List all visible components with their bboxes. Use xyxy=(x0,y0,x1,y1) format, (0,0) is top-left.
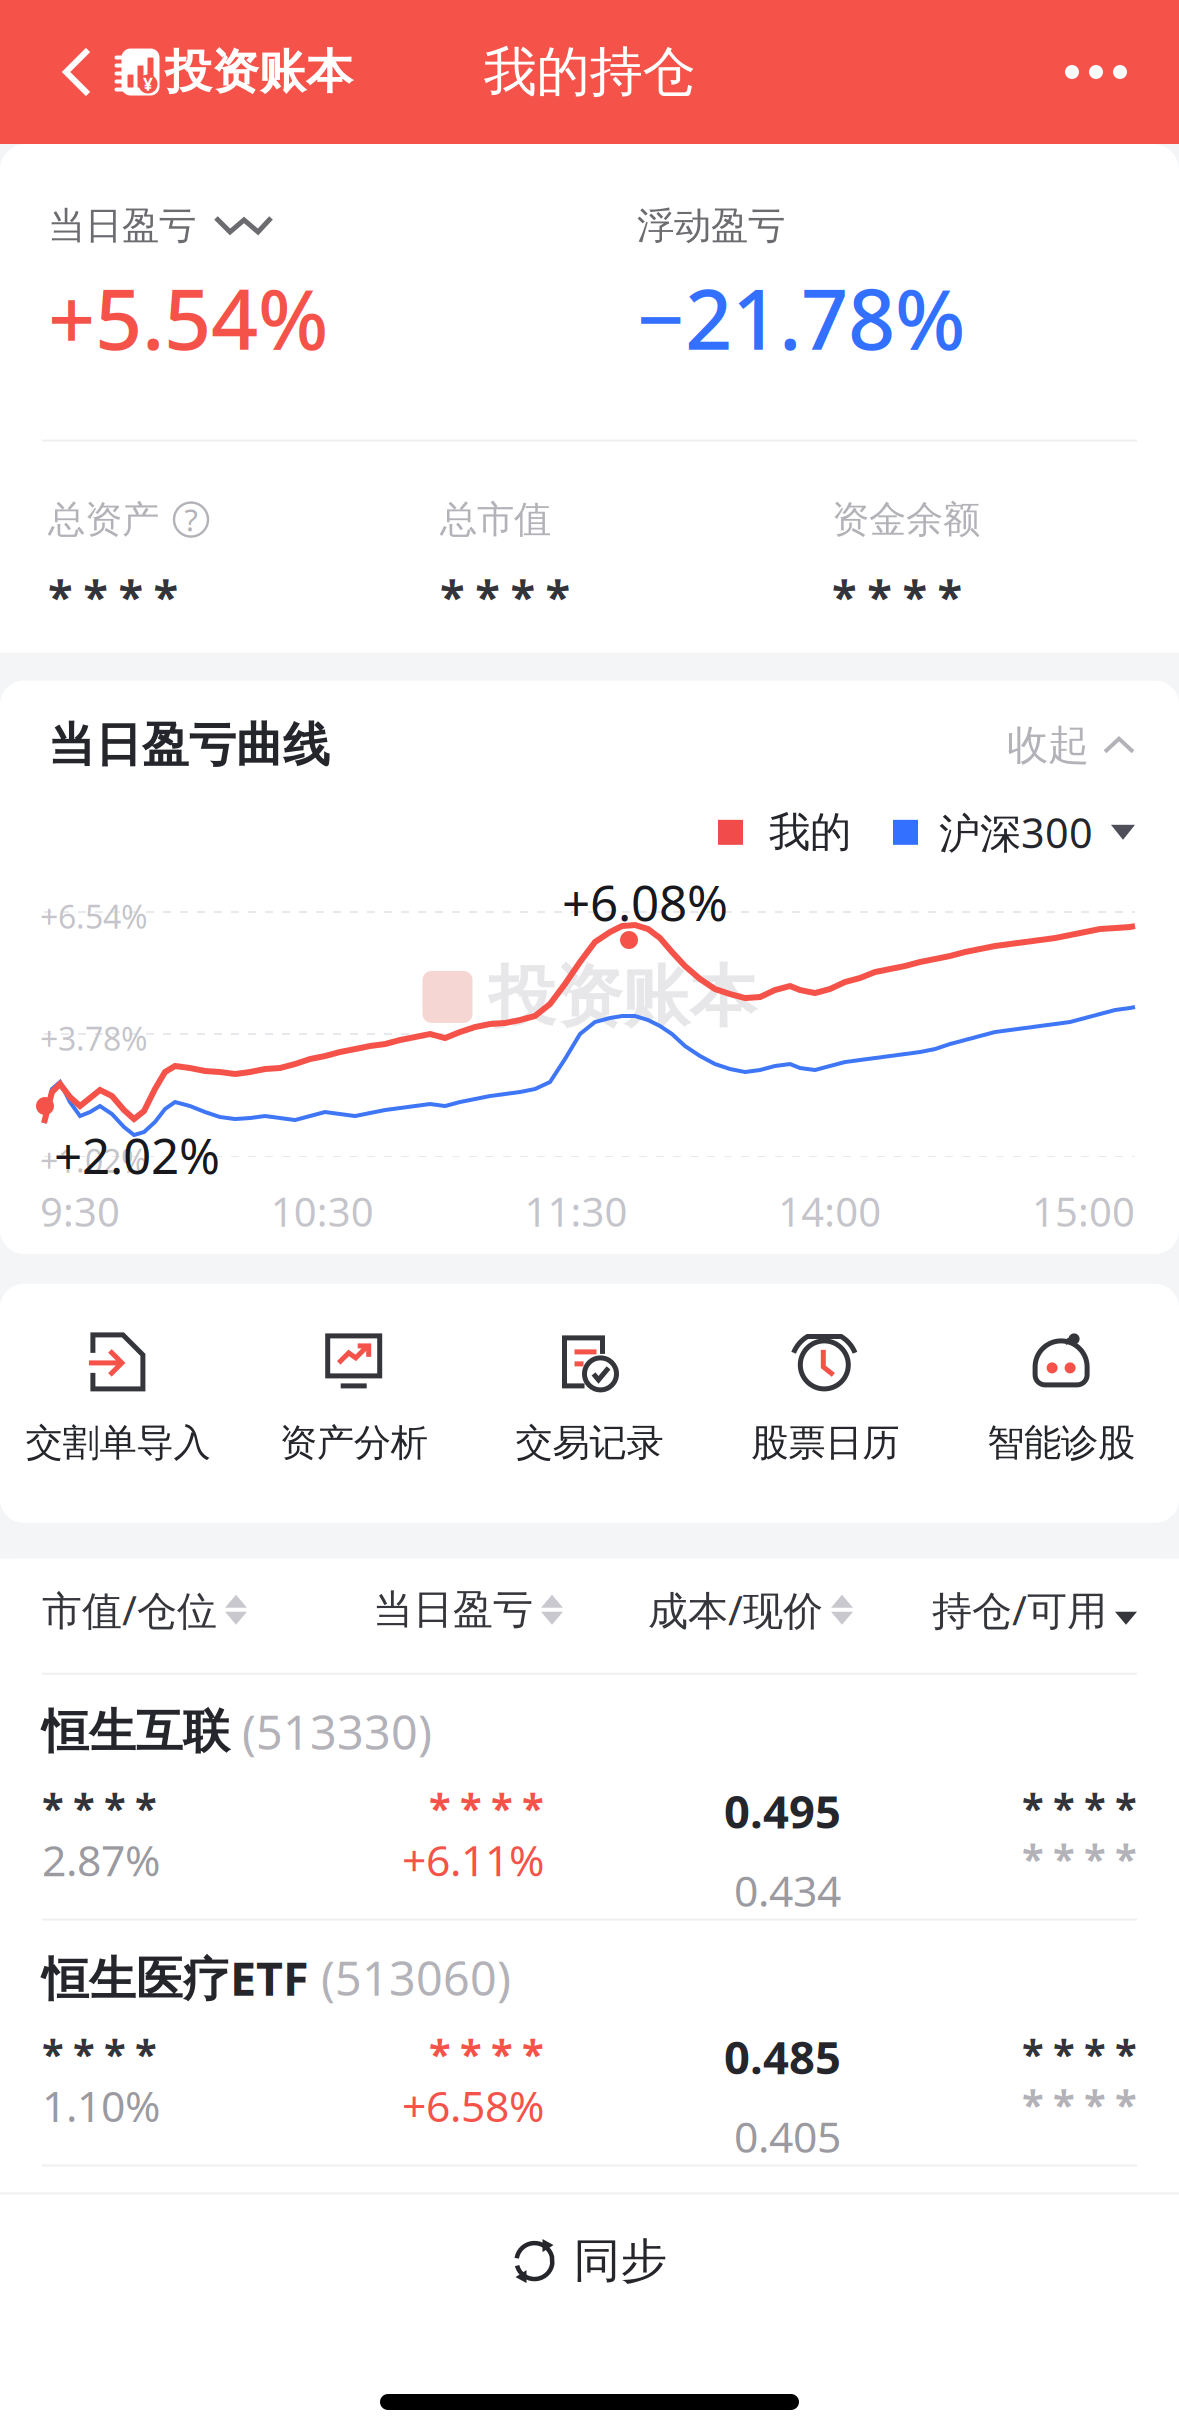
button[interactable]: 更多 xyxy=(1025,0,1179,144)
staticText: * xyxy=(522,1781,544,1834)
staticText: (513060) xyxy=(309,1947,511,2009)
button[interactable]: 返回 投资账本 xyxy=(0,0,363,144)
button[interactable]: 切换对比指数 xyxy=(851,805,1135,860)
staticText: * xyxy=(1084,1831,1106,1884)
staticText: +3.78% xyxy=(40,1017,148,1059)
button[interactable]: 成本/现价 xyxy=(648,1586,898,1634)
staticText: 智能诊股 xyxy=(987,1420,1135,1466)
staticText: 2.87% xyxy=(42,1831,160,1888)
staticText: * xyxy=(73,2027,95,2080)
staticText: +6.11% xyxy=(402,1831,544,1888)
staticText: 资产分析 xyxy=(280,1420,428,1466)
staticText: 浮动盈亏 xyxy=(637,203,785,249)
staticText: 0.495 xyxy=(724,1781,841,1841)
staticText: 交易记录 xyxy=(515,1420,663,1466)
staticText: * xyxy=(832,565,857,626)
button[interactable]: 我的 xyxy=(718,807,851,858)
staticText: * xyxy=(1053,2027,1075,2080)
staticText: * xyxy=(1022,1781,1044,1834)
staticText: * xyxy=(118,565,143,626)
staticText: 总资产 xyxy=(48,497,159,542)
staticText: * xyxy=(135,1781,157,1834)
button[interactable]: 交易记录 xyxy=(472,1284,707,1523)
button[interactable]: 恒生互联 xyxy=(0,1675,1179,1919)
staticText: * xyxy=(1115,2027,1137,2080)
staticText: 10:30 xyxy=(271,1185,374,1238)
staticText: +1.02% xyxy=(40,1139,148,1181)
staticText: * xyxy=(1084,2027,1106,2080)
staticText: 投资账本 xyxy=(488,956,756,1038)
staticText: +6.58% xyxy=(402,2077,544,2134)
staticText: * xyxy=(902,565,927,626)
staticText: +6.08% xyxy=(562,869,728,934)
staticText: 持仓/可用 xyxy=(932,1583,1107,1636)
staticText: ? xyxy=(184,499,197,540)
button[interactable]: 智能诊股 xyxy=(943,1284,1179,1523)
staticText: 15:00 xyxy=(1032,1185,1135,1238)
staticText: * xyxy=(1022,2027,1044,2080)
button[interactable]: 当日盈亏 xyxy=(373,1586,648,1634)
staticText: 投资账本 xyxy=(165,43,353,101)
staticText: * xyxy=(1115,2077,1137,2130)
staticText: 0.434 xyxy=(734,1862,841,1919)
staticText: * xyxy=(460,2027,482,2080)
button[interactable]: 恒生医疗ETF xyxy=(0,1921,1179,2164)
button[interactable]: 交割单导入 xyxy=(0,1284,236,1523)
staticText: * xyxy=(42,1781,64,1834)
staticText: * xyxy=(104,2027,126,2080)
staticText: 14:00 xyxy=(778,1185,881,1238)
button[interactable]: 股票日历 xyxy=(707,1284,943,1523)
staticText: (513330) xyxy=(230,1701,432,1763)
staticText: * xyxy=(475,565,500,626)
staticText: 当日盈亏 xyxy=(48,203,196,249)
staticText: * xyxy=(510,565,535,626)
staticText: * xyxy=(1053,2077,1075,2130)
button[interactable]: 持仓/可用 xyxy=(898,1586,1137,1634)
staticText: 市值/仓位 xyxy=(42,1583,217,1636)
staticText: +2.02% xyxy=(54,1122,220,1187)
staticText: * xyxy=(1084,2077,1106,2130)
staticText: +5.54% xyxy=(48,263,328,373)
staticText: * xyxy=(522,2027,544,2080)
staticText: * xyxy=(104,1781,126,1834)
staticText: 恒生医疗ETF xyxy=(42,1947,309,2009)
staticText: +6.54% xyxy=(40,895,148,937)
button[interactable]: 市值/仓位 xyxy=(42,1586,373,1634)
staticText: * xyxy=(491,2027,513,2080)
staticText: 0.485 xyxy=(724,2027,841,2087)
staticText: * xyxy=(938,565,963,626)
staticText: 0.405 xyxy=(734,2108,841,2164)
staticText: * xyxy=(1115,1831,1137,1884)
staticText: * xyxy=(429,2027,451,2080)
staticText: * xyxy=(1053,1831,1075,1884)
staticText: * xyxy=(1053,1781,1075,1834)
staticText: * xyxy=(73,1781,95,1834)
button[interactable]: 同步 xyxy=(0,2194,1179,2340)
staticText: * xyxy=(1022,2077,1044,2130)
staticText: ¥ xyxy=(143,72,153,95)
staticText: * xyxy=(1022,1831,1044,1884)
staticText: 交割单导入 xyxy=(25,1420,210,1466)
staticText: * xyxy=(1084,1781,1106,1834)
staticText: 1.10% xyxy=(42,2077,160,2134)
staticText: * xyxy=(1115,1781,1137,1834)
staticText: 同步 xyxy=(573,2232,667,2290)
staticText: * xyxy=(491,1781,513,1834)
staticText: 股票日历 xyxy=(751,1420,899,1466)
staticText: 收起 xyxy=(1007,720,1089,771)
staticText: 成本/现价 xyxy=(648,1583,823,1636)
staticText: 11:30 xyxy=(524,1185,627,1238)
staticText: 9:30 xyxy=(40,1185,120,1238)
staticText: * xyxy=(135,2027,157,2080)
staticText: * xyxy=(867,565,892,626)
staticText: 当日盈亏曲线 xyxy=(48,717,330,774)
button[interactable]: 资产分析 xyxy=(236,1284,472,1523)
staticText: * xyxy=(83,565,108,626)
button[interactable]: 收起 xyxy=(1007,720,1135,771)
staticText: −21.78% xyxy=(637,263,965,373)
staticText: * xyxy=(48,565,73,626)
staticText: * xyxy=(546,565,571,626)
staticText: * xyxy=(440,565,465,626)
staticText: * xyxy=(460,1781,482,1834)
staticText: * xyxy=(154,565,179,626)
